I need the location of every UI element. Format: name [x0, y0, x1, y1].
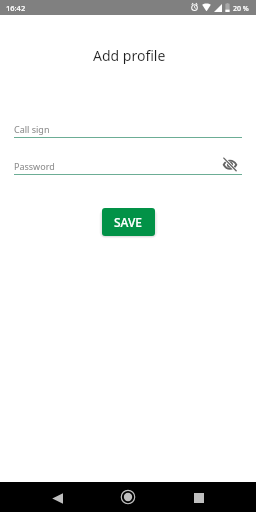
button[interactable]: Recent apps — [185, 484, 213, 512]
button[interactable]: Show password — [220, 156, 239, 172]
button[interactable]: Home — [114, 483, 142, 511]
staticText: Add profile — [93, 46, 166, 64]
button[interactable]: SAVE — [102, 208, 155, 236]
staticText: Password — [14, 160, 55, 172]
button[interactable]: Call sign — [0, 124, 256, 140]
button[interactable]: Password — [0, 161, 256, 177]
staticText: SAVE — [114, 214, 143, 230]
staticText: 20 % — [233, 4, 249, 14]
staticText: 16:42 — [6, 3, 26, 13]
staticText: Call sign — [14, 123, 50, 135]
button[interactable]: Back — [43, 484, 71, 512]
